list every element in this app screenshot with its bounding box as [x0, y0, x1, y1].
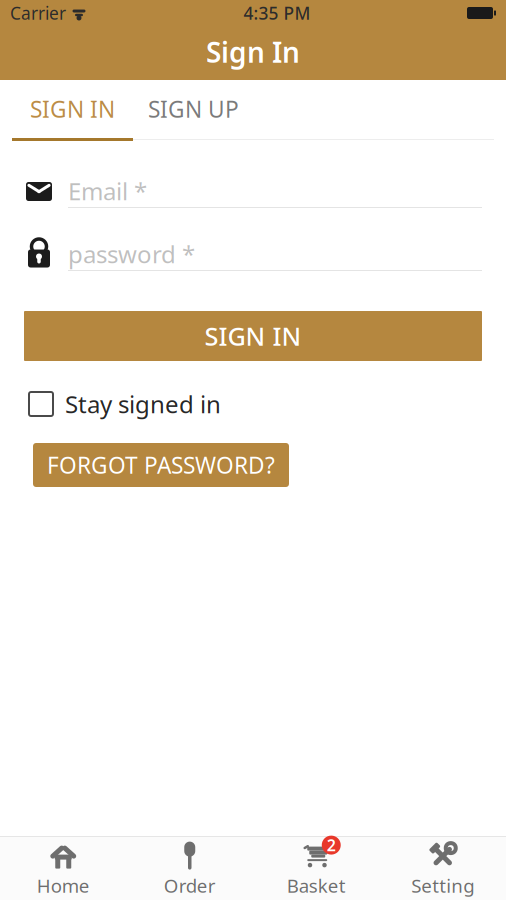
staticText: Setting [411, 873, 474, 898]
staticText: Order [164, 873, 216, 898]
staticText: SIGN IN [30, 94, 115, 124]
staticText: 4:35 PM [243, 1, 310, 24]
staticText: Carrier [10, 1, 66, 24]
button[interactable]: Stay signed in [24, 387, 482, 421]
staticText: SIGN UP [148, 94, 239, 124]
staticText: Stay signed in [65, 388, 221, 420]
button[interactable]: SIGN IN [12, 80, 133, 138]
button[interactable]: SIGN IN [24, 311, 482, 361]
staticText: Sign In [206, 33, 300, 71]
staticText: Email * [68, 175, 147, 207]
staticText: password * [68, 238, 195, 270]
button[interactable]: Home [0, 835, 126, 900]
button[interactable]: Order [126, 835, 253, 900]
button[interactable]: 2 [253, 835, 379, 900]
staticText: SIGN IN [204, 319, 301, 353]
staticText: Home [37, 873, 90, 898]
button[interactable]: FORGOT PASSWORD? [33, 443, 289, 487]
staticText: FORGOT PASSWORD? [47, 450, 275, 480]
button[interactable]: SIGN UP [133, 80, 254, 138]
button[interactable]: Setting [379, 835, 506, 900]
staticText: 2 [327, 834, 336, 856]
staticText: Basket [287, 873, 346, 898]
